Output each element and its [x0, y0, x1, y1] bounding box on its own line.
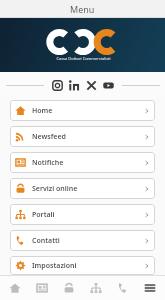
staticText: Notifiche	[32, 158, 64, 168]
button[interactable]: Contatti	[111, 276, 135, 300]
button[interactable]: LinkedIn	[68, 79, 81, 92]
staticText: Contatti	[32, 236, 60, 246]
button[interactable]: Instagram	[51, 79, 64, 92]
button[interactable]: Menu	[138, 276, 162, 300]
button[interactable]: Notifiche	[10, 152, 155, 173]
button[interactable]: YouTube	[102, 79, 115, 92]
staticText: Menu	[70, 3, 95, 15]
button[interactable]: Newsfeed	[10, 126, 155, 147]
staticText: Impostazioni	[32, 261, 77, 271]
staticText: Home	[32, 106, 53, 116]
button[interactable]: X	[85, 79, 98, 92]
button[interactable]: Servizi online	[10, 178, 155, 199]
button[interactable]: Portali	[10, 204, 155, 225]
button[interactable]: Impostazioni	[10, 256, 155, 275]
staticText: Servizi online	[32, 184, 78, 194]
button[interactable]: Portali	[84, 276, 108, 300]
button[interactable]: Newsfeed	[30, 276, 54, 300]
staticText: Newsfeed	[32, 132, 66, 142]
button[interactable]: Contatti	[10, 230, 155, 251]
button[interactable]: Home	[3, 276, 27, 300]
button[interactable]: Servizi online	[57, 276, 81, 300]
staticText: Cassa Dottori Commercialisti	[56, 56, 111, 61]
button[interactable]: Home	[10, 100, 155, 121]
staticText: Portali	[32, 210, 55, 220]
